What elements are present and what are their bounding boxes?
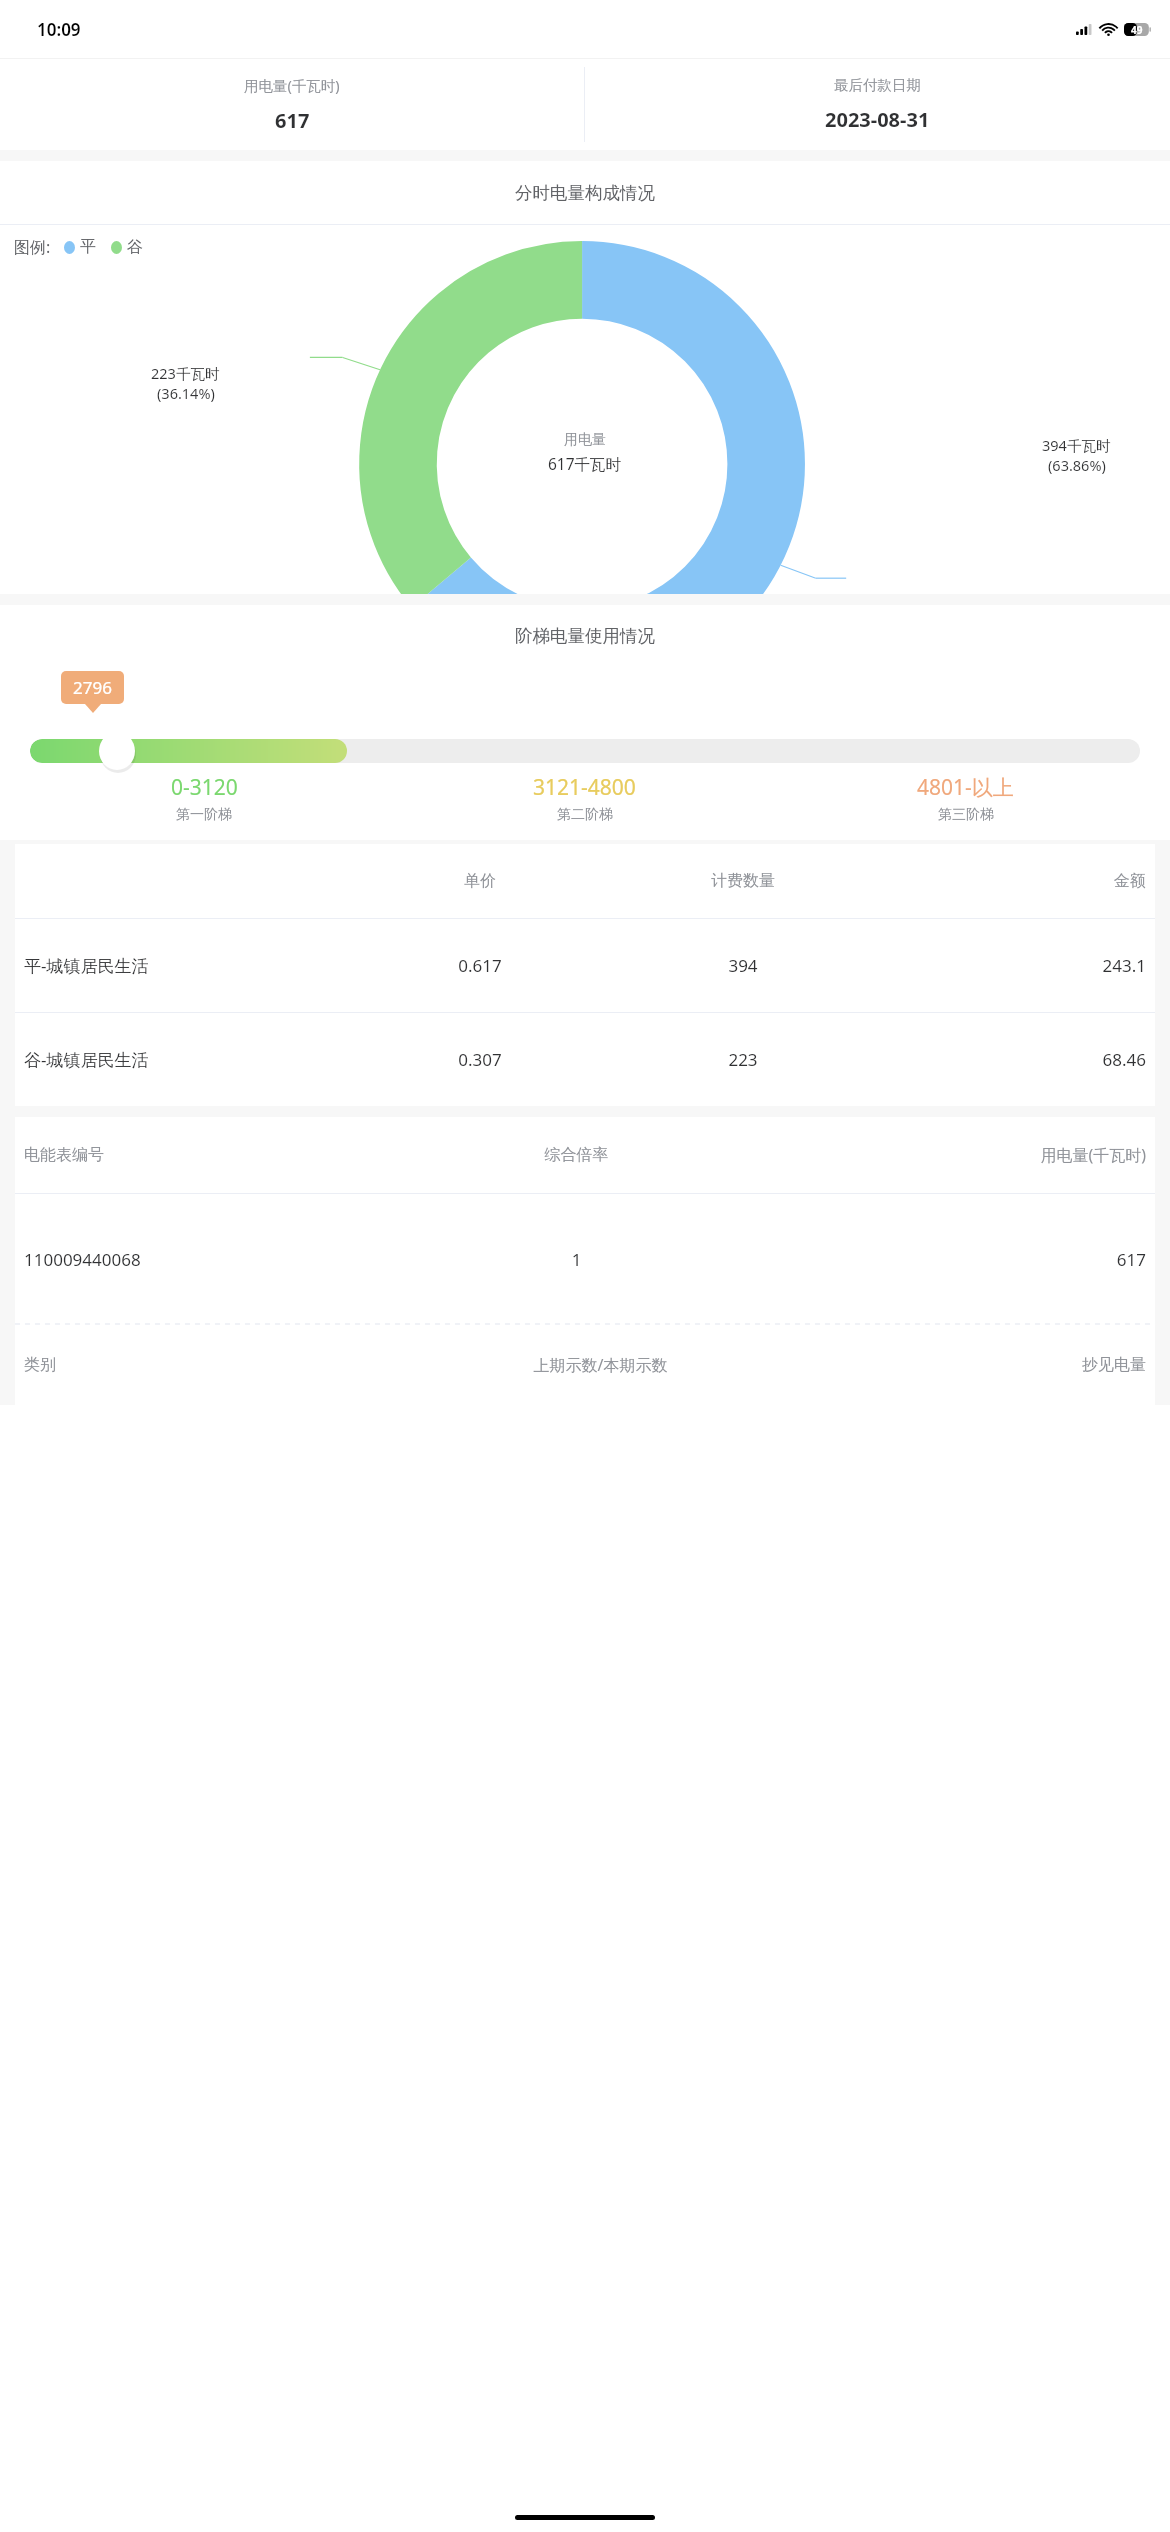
staticText: 3121-4800 [533,773,636,802]
staticText: 抄见电量 [843,1355,1146,1375]
button[interactable]: 谷 [111,237,143,257]
staticText: 谷 [127,237,143,257]
staticText: 用电量(千瓦时) [244,75,340,95]
staticText: 0.307 [363,1048,597,1071]
staticText: 223 [597,1048,889,1071]
button[interactable]: 平 [64,237,96,257]
staticText: (63.86%) [1048,455,1106,475]
staticText: 10:09 [37,18,81,41]
staticText: 上期示数/本期示数 [358,1354,843,1376]
staticText: 第二阶梯 [557,806,613,824]
staticText: 0-3120 [171,773,238,802]
staticText: 2023-08-31 [825,106,930,133]
staticText: 最后付款日期 [834,76,921,94]
staticText: 223千瓦时 [151,363,220,383]
staticText: 金额 [889,871,1146,891]
button[interactable]: 平-城镇居民生活 [24,919,1146,1012]
button[interactable]: 110009440068 [24,1194,1146,1324]
staticText: 第一阶梯 [176,806,232,824]
button[interactable]: 0-3120 [14,773,394,824]
staticText: 平-城镇居民生活 [24,954,363,977]
button[interactable]: 用电量(千瓦时) [0,59,584,150]
staticText: 617千瓦时 [548,453,622,474]
staticText: (36.14%) [157,383,215,403]
staticText: 平 [80,237,96,257]
staticText: 用电量(千瓦时) [739,1144,1146,1166]
staticText: 图例: [14,236,51,258]
staticText: 0.617 [363,954,597,977]
staticText: 394 [597,954,889,977]
button[interactable]: 最后付款日期 [585,59,1170,150]
staticText: 617 [739,1248,1146,1271]
staticText: 综合倍率 [414,1145,739,1165]
staticText: 第三阶梯 [938,806,994,824]
staticText: 394千瓦时 [1042,435,1111,455]
staticText: 单价 [363,871,597,891]
staticText: 1 [414,1248,739,1271]
staticText: 谷-城镇居民生活 [24,1048,363,1071]
staticText: 110009440068 [24,1248,414,1271]
staticText: 49 [1131,23,1143,36]
staticText: 计费数量 [597,871,889,891]
staticText: 分时电量构成情况 [515,182,655,204]
staticText: 4801-以上 [917,773,1014,802]
staticText: 用电量 [564,431,606,449]
staticText: 68.46 [889,1048,1146,1071]
staticText: 617 [275,107,310,134]
button[interactable]: 谷-城镇居民生活 [24,1013,1146,1106]
staticText: 243.1 [889,954,1146,977]
button[interactable]: 4801-以上 [775,773,1156,824]
staticText: 电能表编号 [24,1145,414,1165]
staticText: 类别 [24,1355,358,1375]
button[interactable] [30,739,1140,763]
staticText: 2796 [73,676,112,699]
staticText: 阶梯电量使用情况 [515,625,655,647]
button[interactable]: 3121-4800 [394,773,775,824]
